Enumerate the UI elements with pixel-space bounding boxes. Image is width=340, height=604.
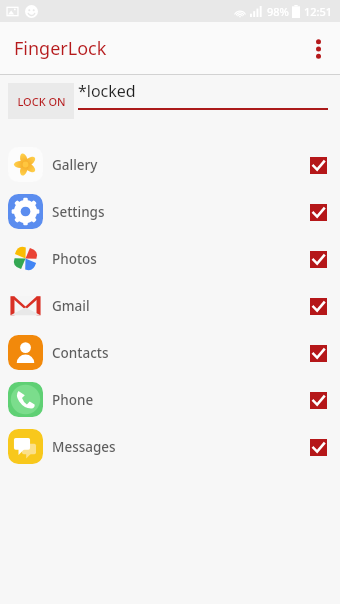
button[interactable]: *locked (78, 80, 328, 110)
staticText: Phone (52, 391, 298, 409)
button[interactable]: Contacts (0, 329, 340, 376)
button[interactable]: LOCK ON (8, 83, 74, 119)
button[interactable]: Settings locked (298, 192, 338, 232)
button[interactable]: Photos locked (298, 239, 338, 279)
staticText: Settings (52, 203, 298, 221)
button[interactable]: More options (296, 27, 340, 71)
button[interactable]: Phone (0, 376, 340, 423)
staticText: Contacts (52, 344, 298, 362)
staticText: Messages (52, 438, 298, 456)
staticText: Gallery (52, 156, 298, 174)
staticText: Gmail (52, 297, 298, 315)
button[interactable]: Settings (0, 188, 340, 235)
staticText: LOCK ON (17, 94, 66, 109)
button[interactable]: Gmail (0, 282, 340, 329)
staticText: Photos (52, 250, 298, 268)
staticText: FingerLock (14, 36, 107, 61)
button[interactable]: Photos (0, 235, 340, 282)
button[interactable]: Phone locked (298, 380, 338, 420)
button[interactable]: Contacts locked (298, 333, 338, 373)
staticText: 98% (267, 4, 289, 19)
button[interactable]: Gallery locked (298, 145, 338, 185)
button[interactable]: Gmail locked (298, 286, 338, 326)
staticText: *locked (78, 80, 136, 102)
staticText: 12:51 (304, 4, 333, 19)
button[interactable]: Messages locked (298, 427, 338, 467)
button[interactable]: Gallery (0, 141, 340, 188)
button[interactable]: Messages (0, 423, 340, 470)
